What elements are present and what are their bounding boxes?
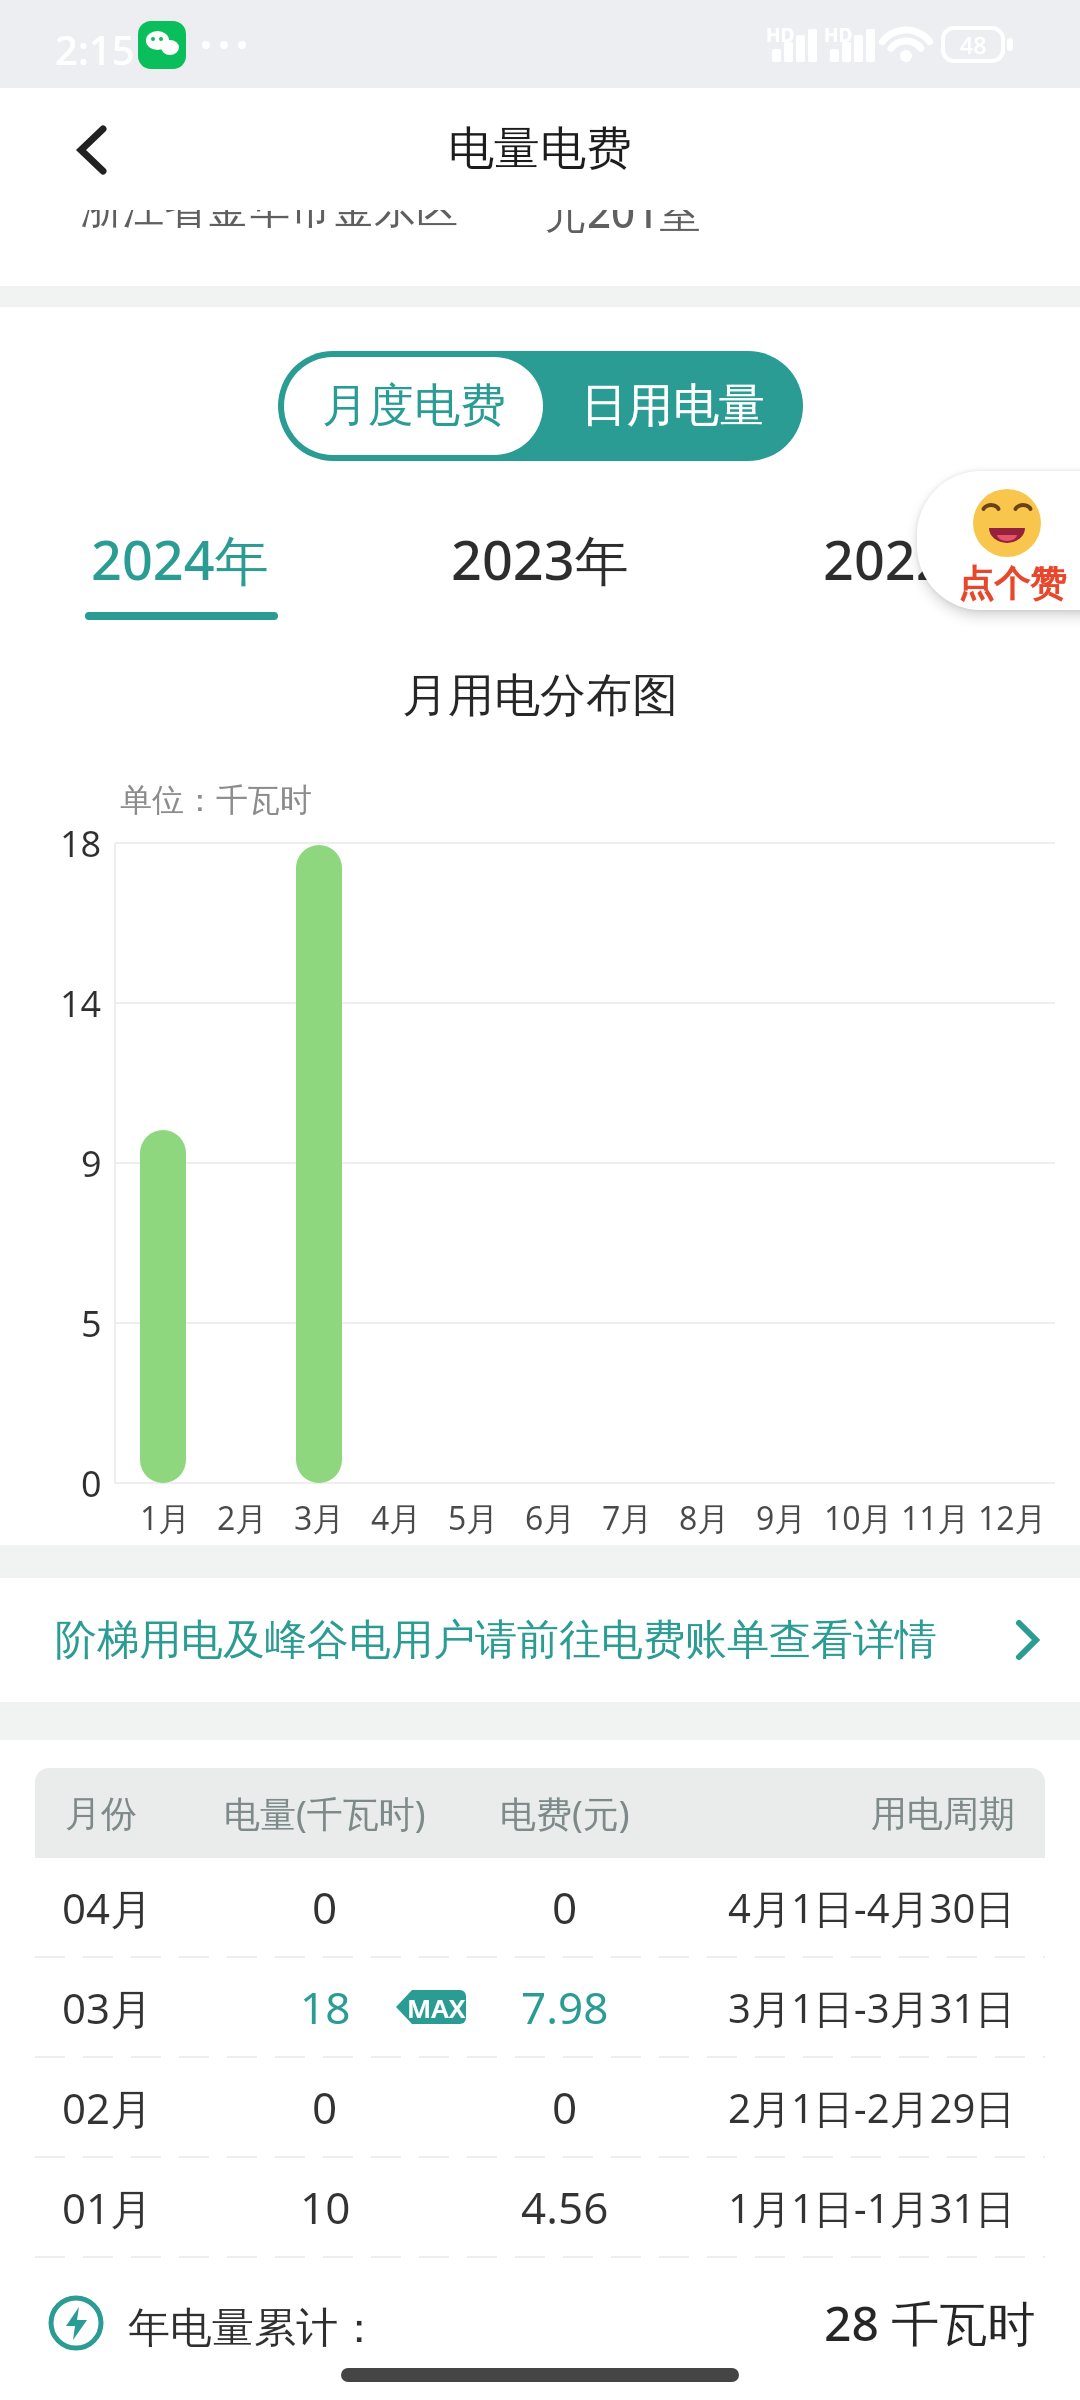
staticText: 7.98 bbox=[521, 1977, 609, 2037]
staticText: 3月 bbox=[294, 1496, 345, 1540]
staticText: 0 bbox=[552, 1877, 578, 1937]
staticText: 10 bbox=[300, 2177, 351, 2237]
staticText: 0 bbox=[312, 1877, 338, 1937]
staticText: 8月 bbox=[679, 1496, 730, 1540]
staticText: HD bbox=[766, 22, 795, 48]
staticText: 48 bbox=[960, 29, 987, 60]
staticText: 2024年 bbox=[91, 522, 269, 592]
staticText: 02月 bbox=[62, 2079, 153, 2136]
staticText: 04月 bbox=[62, 1879, 153, 1936]
staticText: 5月 bbox=[448, 1496, 499, 1540]
staticText: 18 bbox=[60, 819, 102, 867]
staticText: 14 bbox=[60, 979, 102, 1027]
button[interactable]: 04月 bbox=[0, 1858, 1080, 1956]
staticText: 0 bbox=[81, 1459, 102, 1507]
staticText: 4.56 bbox=[521, 2177, 609, 2237]
staticText: 18 bbox=[300, 1977, 351, 2037]
staticText: 4月1日-4月30日 bbox=[728, 1880, 1016, 1935]
button[interactable]: 点个赞 bbox=[917, 471, 1080, 610]
staticText: 月用电分布图 bbox=[402, 667, 678, 725]
staticText: 用电周期 bbox=[871, 1791, 1015, 1836]
staticText: 1月 bbox=[140, 1496, 191, 1540]
button[interactable] bbox=[60, 118, 124, 182]
staticText: 9 bbox=[81, 1139, 102, 1187]
staticText: 9月 bbox=[756, 1496, 807, 1540]
staticText: 元201室 bbox=[545, 210, 702, 240]
staticText: 月份 bbox=[65, 1791, 137, 1836]
staticText: 28 千瓦时 bbox=[824, 2290, 1036, 2356]
button[interactable]: 阶梯用电及峰谷电用户请前往电费账单查看详情 bbox=[0, 1578, 1080, 1702]
staticText: 3月1日-3月31日 bbox=[728, 1980, 1016, 2035]
button[interactable]: 03月 bbox=[0, 1958, 1080, 2056]
staticText: 6月 bbox=[525, 1496, 576, 1540]
staticText: 0 bbox=[312, 2077, 338, 2137]
staticText: 11月 bbox=[901, 1496, 970, 1540]
button[interactable]: 2024年 bbox=[30, 522, 330, 592]
staticText: 浙江省金华市金东区 bbox=[80, 210, 458, 236]
staticText: 电量(千瓦时) bbox=[224, 1789, 426, 1838]
staticText: 4月 bbox=[371, 1496, 422, 1540]
staticText: 阶梯用电及峰谷电用户请前往电费账单查看详情 bbox=[55, 1614, 937, 1667]
staticText: 1月1日-1月31日 bbox=[728, 2180, 1016, 2235]
staticText: 月度电费 bbox=[322, 377, 506, 435]
staticText: 日用电量 bbox=[581, 377, 765, 435]
staticText: 5 bbox=[81, 1299, 102, 1347]
staticText: 10月 bbox=[824, 1496, 893, 1540]
button[interactable]: 01月 bbox=[0, 2158, 1080, 2256]
staticText: 年电量累计： bbox=[128, 2302, 380, 2355]
staticText: 2:15 bbox=[55, 22, 135, 76]
button[interactable]: 日用电量 bbox=[543, 351, 803, 461]
button[interactable]: 02月 bbox=[0, 2058, 1080, 2156]
staticText: 电费(元) bbox=[500, 1789, 630, 1838]
staticText: 03月 bbox=[62, 1979, 153, 2036]
button[interactable]: 月度电费 bbox=[284, 357, 543, 455]
staticText: 12月 bbox=[978, 1496, 1047, 1540]
staticText: 0 bbox=[552, 2077, 578, 2137]
staticText: 电量电费 bbox=[448, 120, 632, 178]
staticText: HD bbox=[824, 22, 853, 48]
staticText: 01月 bbox=[62, 2179, 153, 2236]
staticText: 2月1日-2月29日 bbox=[728, 2080, 1016, 2135]
staticText: 2023年 bbox=[451, 522, 629, 592]
button[interactable]: 2023年 bbox=[390, 522, 690, 592]
staticText: MAX bbox=[407, 1990, 466, 2025]
staticText: 2月 bbox=[217, 1496, 268, 1540]
staticText: 单位：千瓦时 bbox=[120, 780, 312, 820]
button[interactable]: 2022年 bbox=[762, 522, 1062, 592]
staticText: 点个赞 bbox=[958, 561, 1066, 606]
staticText: 2022年 bbox=[823, 522, 1001, 592]
staticText: 7月 bbox=[602, 1496, 653, 1540]
